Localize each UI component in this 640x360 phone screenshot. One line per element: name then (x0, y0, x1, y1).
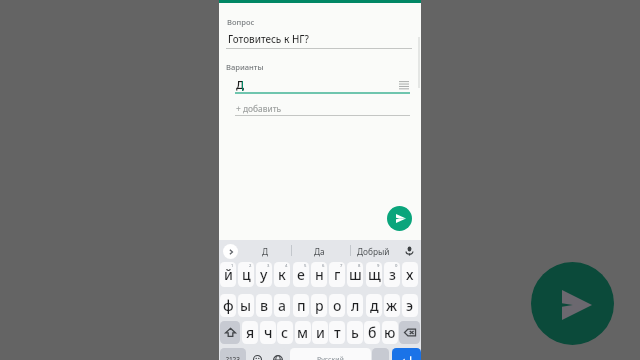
button[interactable]: ф (220, 294, 236, 317)
button[interactable]: Change keyboard language (268, 348, 287, 360)
button[interactable]: э (402, 294, 418, 317)
button[interactable]: ю (382, 321, 398, 344)
staticText: в (260, 296, 269, 315)
button[interactable]: с (277, 321, 293, 344)
staticText: к (278, 265, 286, 284)
button[interactable]: ы (238, 294, 254, 317)
button[interactable]: о (329, 294, 345, 317)
staticText: 8 (358, 263, 361, 269)
staticText: 2 (249, 263, 252, 269)
staticText: э (406, 296, 414, 315)
button[interactable]: р (311, 294, 327, 317)
button[interactable]: Send (387, 206, 412, 231)
button[interactable]: ц (238, 262, 254, 287)
button[interactable]: Space (290, 348, 371, 360)
staticText: с (281, 323, 289, 342)
staticText: т (334, 323, 341, 342)
staticText: а (278, 296, 286, 315)
button[interactable]: Emoji (249, 348, 266, 360)
button[interactable]: п (293, 294, 309, 317)
button[interactable]: г (329, 262, 345, 287)
staticText: Д (236, 78, 245, 92)
button[interactable]: х (402, 262, 418, 287)
staticText: я (246, 323, 255, 342)
button[interactable]: у (256, 262, 272, 287)
staticText: ь (351, 323, 359, 342)
button[interactable]: й (220, 262, 236, 287)
button[interactable]: Reorder option (397, 78, 411, 92)
staticText: р (315, 296, 324, 315)
staticText: ш (349, 265, 362, 284)
button[interactable]: Voice input (402, 243, 417, 258)
button[interactable]: л (347, 294, 363, 317)
staticText: л (351, 296, 360, 315)
staticText: ц (242, 265, 251, 284)
button[interactable]: Д (242, 241, 288, 261)
staticText: й (224, 265, 233, 284)
button[interactable]: Backspace (399, 321, 420, 344)
staticText: Добрый (357, 246, 390, 257)
button[interactable]: ь (347, 321, 363, 344)
staticText: Готовитесь к НГ? (228, 33, 309, 46)
button[interactable]: ж (384, 294, 400, 317)
staticText: ы (240, 296, 252, 315)
staticText: 9 (377, 263, 380, 269)
staticText: ф (223, 296, 234, 315)
staticText: г (334, 265, 341, 284)
staticText: ж (386, 296, 398, 315)
button[interactable]: Expand suggestions (223, 244, 238, 259)
staticText: Вопрос (227, 17, 255, 27)
button[interactable]: и (312, 321, 328, 344)
staticText: Д (262, 246, 269, 257)
staticText: ю (384, 323, 396, 342)
staticText: е (297, 265, 305, 284)
staticText: 1 (231, 263, 234, 269)
staticText: Да (314, 246, 325, 257)
staticText: м (297, 323, 309, 342)
button[interactable]: Да (294, 241, 344, 261)
button[interactable]: Enter (392, 348, 421, 360)
button[interactable]: н (311, 262, 327, 287)
staticText: щ (368, 265, 381, 284)
staticText: д (370, 296, 379, 315)
staticText: Русский (317, 355, 344, 360)
staticText: 6 (322, 263, 325, 269)
button[interactable]: з (384, 262, 400, 287)
staticText: б (368, 323, 377, 342)
button[interactable]: в (256, 294, 272, 317)
staticText: + добавить (236, 103, 282, 114)
staticText: з (389, 265, 396, 284)
button[interactable]: д (366, 294, 382, 317)
staticText: 3 (267, 263, 270, 269)
staticText: и (316, 323, 325, 342)
button[interactable]: . (372, 348, 389, 360)
staticText: 0 (395, 263, 398, 269)
button[interactable]: Numbers and symbols (220, 348, 246, 360)
button[interactable]: Добрый (349, 241, 398, 261)
staticText: 7 (340, 263, 343, 269)
staticText: п (297, 296, 306, 315)
staticText: ?123 (226, 355, 241, 360)
staticText: н (315, 265, 324, 284)
button[interactable]: е (293, 262, 309, 287)
staticText: о (333, 296, 342, 315)
button[interactable]: щ (366, 262, 382, 287)
button[interactable]: Play video (531, 262, 614, 345)
button[interactable]: ч (260, 321, 276, 344)
button[interactable]: б (364, 321, 380, 344)
staticText: Варианты (226, 62, 264, 72)
button[interactable]: Shift (220, 321, 240, 344)
button[interactable]: к (274, 262, 290, 287)
button[interactable]: м (295, 321, 311, 344)
staticText: 4 (285, 263, 288, 269)
button[interactable]: ш (347, 262, 363, 287)
button[interactable]: я (242, 321, 258, 344)
staticText: х (406, 265, 414, 284)
staticText: у (260, 265, 268, 284)
staticText: 5 (304, 263, 307, 269)
button[interactable]: а (274, 294, 290, 317)
button[interactable]: т (329, 321, 345, 344)
button[interactable]: + добавить (236, 103, 288, 115)
staticText: ч (264, 323, 273, 342)
